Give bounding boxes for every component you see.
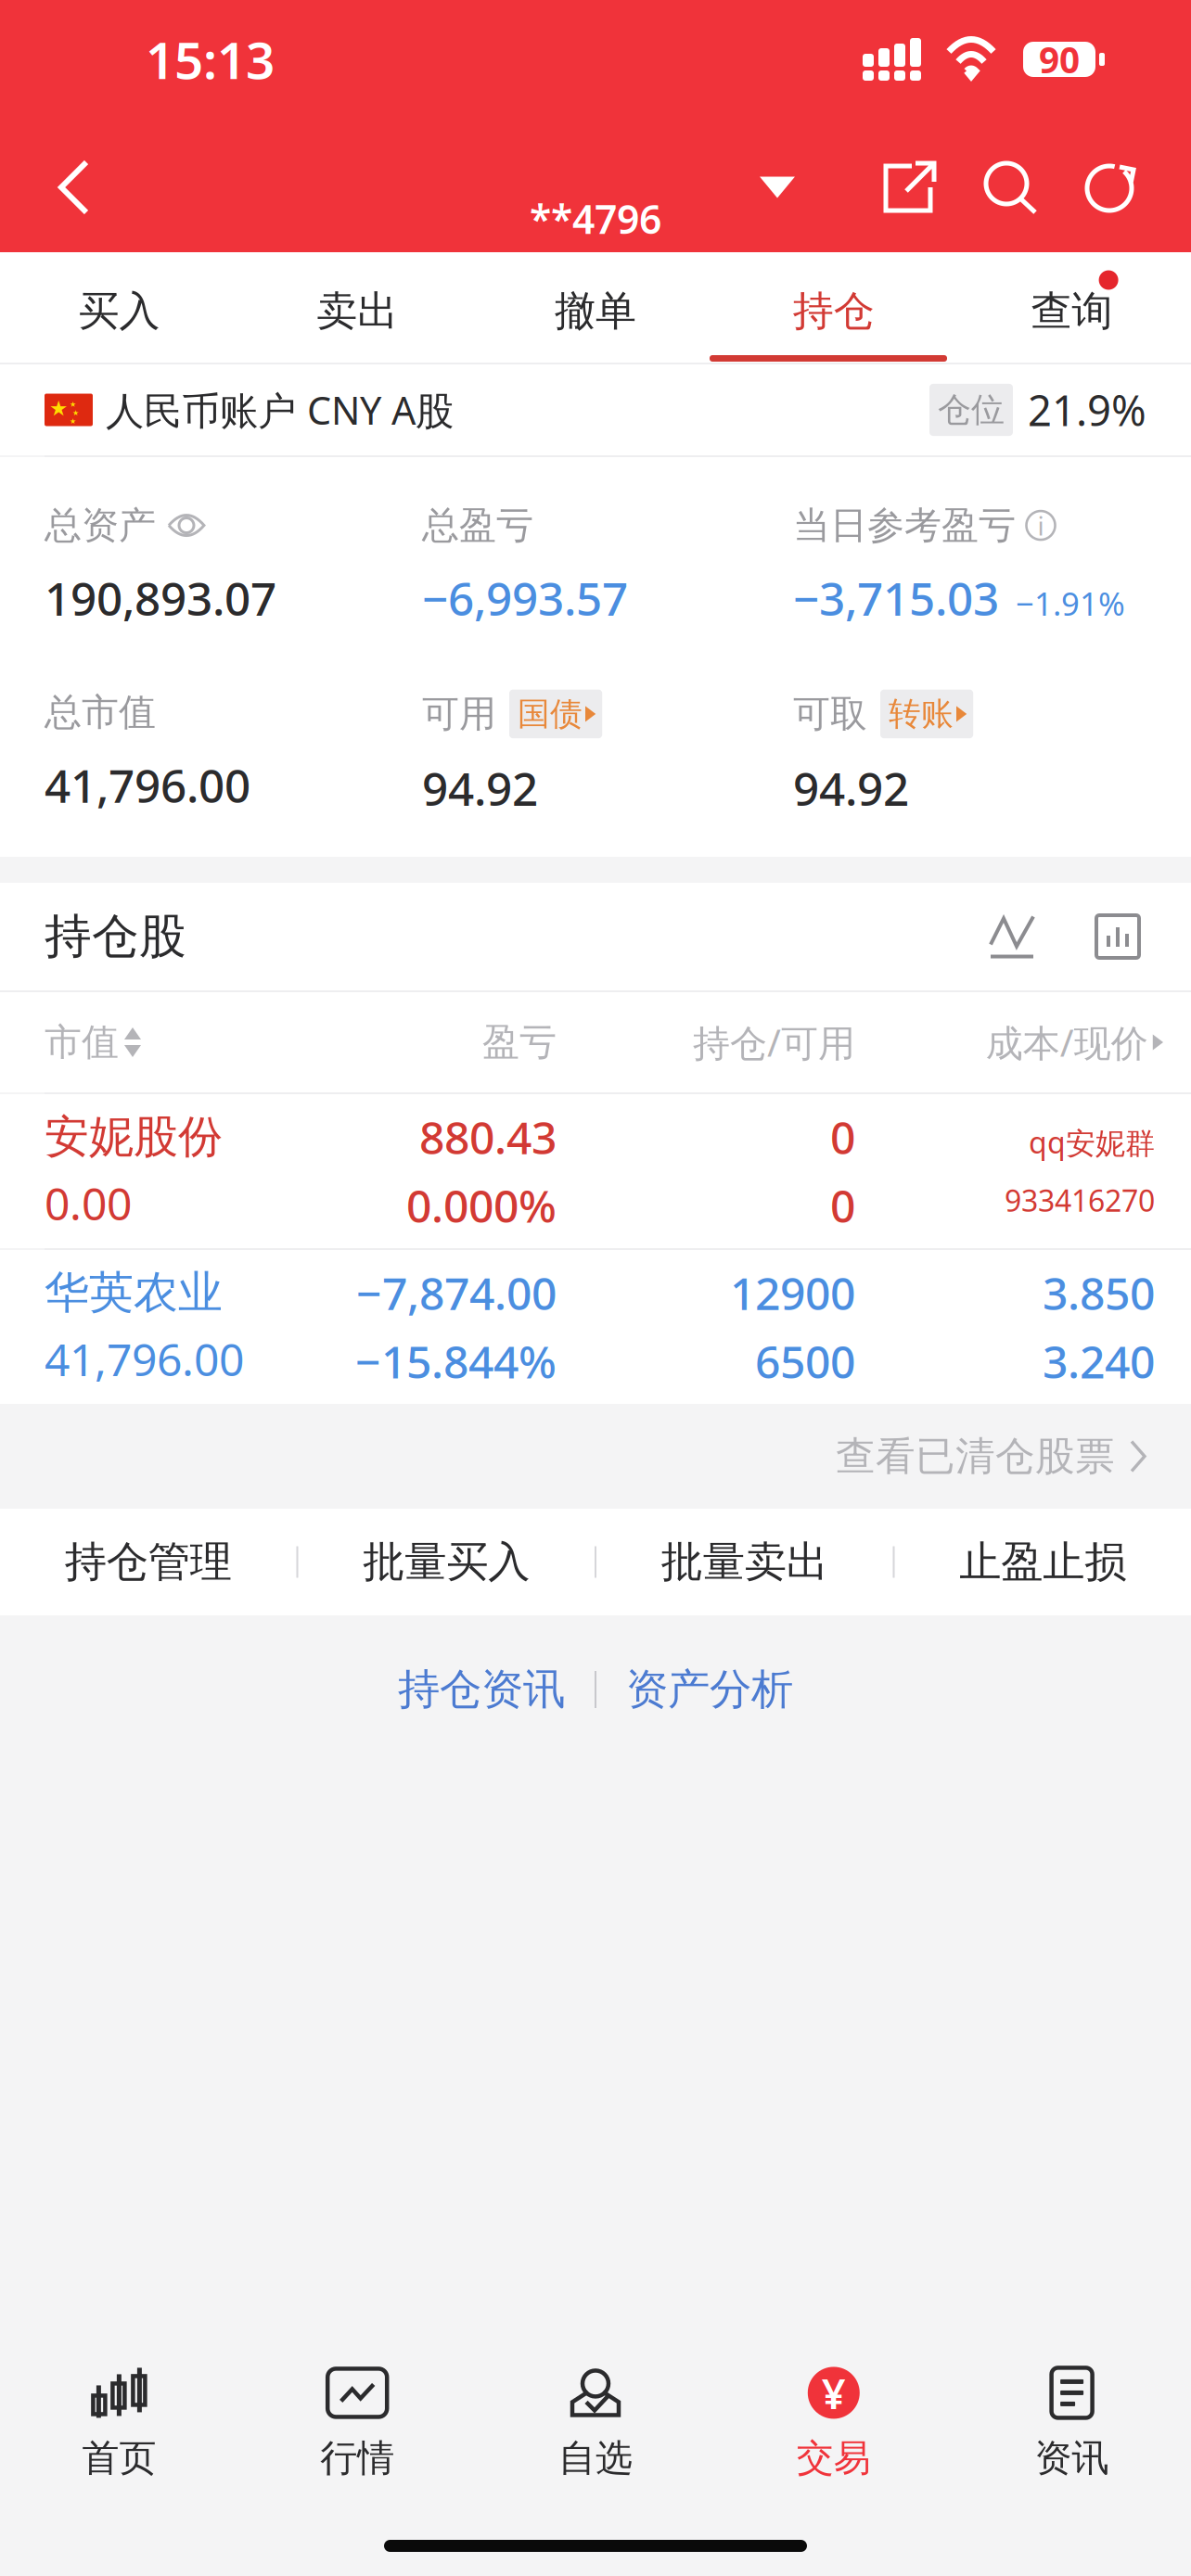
- staticText: 交易: [797, 2435, 871, 2481]
- staticText: 安妮股份: [45, 1110, 223, 1164]
- staticText: 可取: [793, 691, 867, 737]
- staticText: 持仓/可用: [693, 1018, 855, 1067]
- staticText: 190,893.07: [45, 568, 276, 628]
- staticText: 止盈止损: [959, 1536, 1126, 1588]
- button[interactable]: Search: [964, 130, 1057, 245]
- staticText: 查看已清仓股票: [836, 1432, 1115, 1481]
- staticText: 资讯: [1035, 2435, 1109, 2481]
- staticText: 买入: [78, 286, 160, 336]
- staticText: 首页: [82, 2435, 156, 2481]
- button[interactable]: Bar chart: [1089, 915, 1146, 958]
- button[interactable]: 资产分析: [596, 1639, 823, 1741]
- button[interactable]: 持仓资讯: [368, 1639, 595, 1741]
- staticText: −1.91%: [1016, 582, 1125, 625]
- button[interactable]: 止盈止损: [895, 1509, 1191, 1615]
- staticText: 华英农业: [45, 1265, 223, 1320]
- staticText: 0: [830, 1176, 855, 1235]
- button[interactable]: 国债: [509, 690, 602, 738]
- staticText: 3.240: [1043, 1332, 1155, 1391]
- button[interactable]: 行情: [238, 2337, 476, 2509]
- staticText: 批量买入: [363, 1536, 530, 1588]
- staticText: **4796: [530, 192, 661, 245]
- button[interactable]: Share: [864, 130, 956, 245]
- button[interactable]: 买入: [0, 253, 238, 362]
- staticText: 6500: [755, 1332, 855, 1391]
- staticText: 撤单: [555, 286, 636, 336]
- button[interactable]: 批量卖出: [596, 1509, 893, 1615]
- staticText: ★: [70, 417, 76, 425]
- staticText: 资产分析: [626, 1664, 793, 1715]
- staticText: 12900: [730, 1263, 855, 1322]
- staticText: 3.850: [1043, 1263, 1155, 1322]
- staticText: −3,715.03: [793, 568, 999, 628]
- button[interactable]: 撤单: [476, 253, 715, 362]
- button[interactable]: Refresh: [1064, 130, 1155, 245]
- staticText: 0.000%: [406, 1176, 557, 1235]
- staticText: 94.92: [793, 758, 909, 819]
- staticText: 查询: [1031, 286, 1113, 336]
- staticText: 批量卖出: [661, 1536, 828, 1588]
- button[interactable]: 资讯: [953, 2337, 1191, 2509]
- staticText: 0.00: [45, 1174, 132, 1233]
- staticText: 盈亏: [482, 1019, 557, 1065]
- staticText: 933416270: [1005, 1181, 1155, 1220]
- staticText: 总资产: [45, 503, 156, 548]
- staticText: i: [1037, 508, 1044, 543]
- staticText: 仓位: [938, 389, 1005, 430]
- staticText: 行情: [320, 2435, 394, 2481]
- staticText: 卖出: [316, 286, 398, 336]
- button[interactable]: 持仓管理: [0, 1509, 296, 1615]
- staticText: 41,796.00: [45, 1329, 244, 1388]
- button[interactable]: 华英农业: [0, 1250, 1191, 1404]
- button[interactable]: 卖出: [238, 253, 476, 362]
- button[interactable]: 转账: [880, 690, 973, 738]
- button[interactable]: Back: [0, 130, 126, 245]
- staticText: ★: [72, 409, 79, 417]
- button[interactable]: 安妮股份: [0, 1094, 1191, 1248]
- staticText: 国债: [518, 694, 583, 734]
- staticText: −7,874.00: [356, 1263, 557, 1322]
- button[interactable]: 持仓: [715, 253, 953, 362]
- button[interactable]: ★: [0, 364, 1191, 455]
- staticText: 转账: [889, 694, 954, 734]
- staticText: 持仓: [793, 286, 875, 336]
- staticText: 人民币账户 CNY A股: [106, 384, 454, 435]
- staticText: 总市值: [45, 690, 156, 735]
- button[interactable]: 查询: [953, 253, 1191, 362]
- button[interactable]: Switch account: [734, 130, 821, 245]
- staticText: −15.844%: [355, 1332, 557, 1391]
- staticText: 15:13: [146, 26, 275, 93]
- staticText: 21.9%: [1028, 382, 1146, 438]
- staticText: 90: [1039, 36, 1080, 83]
- staticText: 持仓资讯: [398, 1664, 565, 1715]
- staticText: 市值: [45, 1019, 119, 1065]
- staticText: ★: [49, 397, 68, 420]
- staticText: ★: [70, 400, 76, 409]
- staticText: 880.43: [419, 1107, 557, 1167]
- staticText: −6,993.57: [422, 568, 628, 628]
- button[interactable]: Trend chart: [981, 914, 1043, 959]
- staticText: 当日参考盈亏: [793, 503, 1016, 548]
- staticText: 94.92: [422, 758, 538, 819]
- staticText: 持仓管理: [65, 1536, 232, 1588]
- staticText: 自选: [558, 2435, 633, 2481]
- staticText: ¥: [822, 2365, 846, 2421]
- staticText: qq安妮群: [1029, 1122, 1155, 1162]
- button[interactable]: 查看已清仓股票: [0, 1404, 1191, 1509]
- staticText: 0: [830, 1107, 855, 1167]
- button[interactable]: 批量买入: [298, 1509, 595, 1615]
- staticText: 持仓股: [45, 908, 186, 965]
- button[interactable]: ¥: [715, 2337, 953, 2509]
- staticText: 可用: [422, 691, 496, 737]
- button[interactable]: 自选: [476, 2337, 715, 2509]
- staticText: 总盈亏: [422, 503, 533, 548]
- staticText: 成本/现价: [986, 1018, 1148, 1067]
- staticText: 41,796.00: [45, 755, 250, 815]
- button[interactable]: 首页: [0, 2337, 238, 2509]
